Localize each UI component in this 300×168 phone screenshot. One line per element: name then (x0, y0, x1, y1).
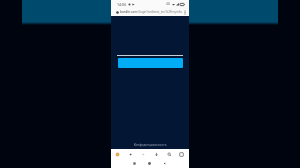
staticText: bankle.com (120, 10, 138, 14)
button[interactable]: Back (160, 159, 169, 168)
button[interactable] (118, 58, 183, 68)
staticText: Конфиденциальность (111, 143, 189, 147)
button[interactable]: Home (112, 149, 122, 159)
button[interactable]: Recents (130, 159, 139, 168)
button[interactable]: Forward (138, 149, 148, 159)
staticText: /login?redirect_to=%2Fmyinfo (138, 10, 182, 14)
staticText: 14:06 (117, 2, 127, 7)
button[interactable]: Tabs (176, 149, 186, 159)
staticText: 4G (166, 2, 171, 6)
button[interactable]: Back (125, 149, 135, 159)
button[interactable]: Home (145, 159, 154, 168)
button[interactable]: Search (164, 149, 174, 159)
button[interactable]: Download (151, 149, 161, 159)
